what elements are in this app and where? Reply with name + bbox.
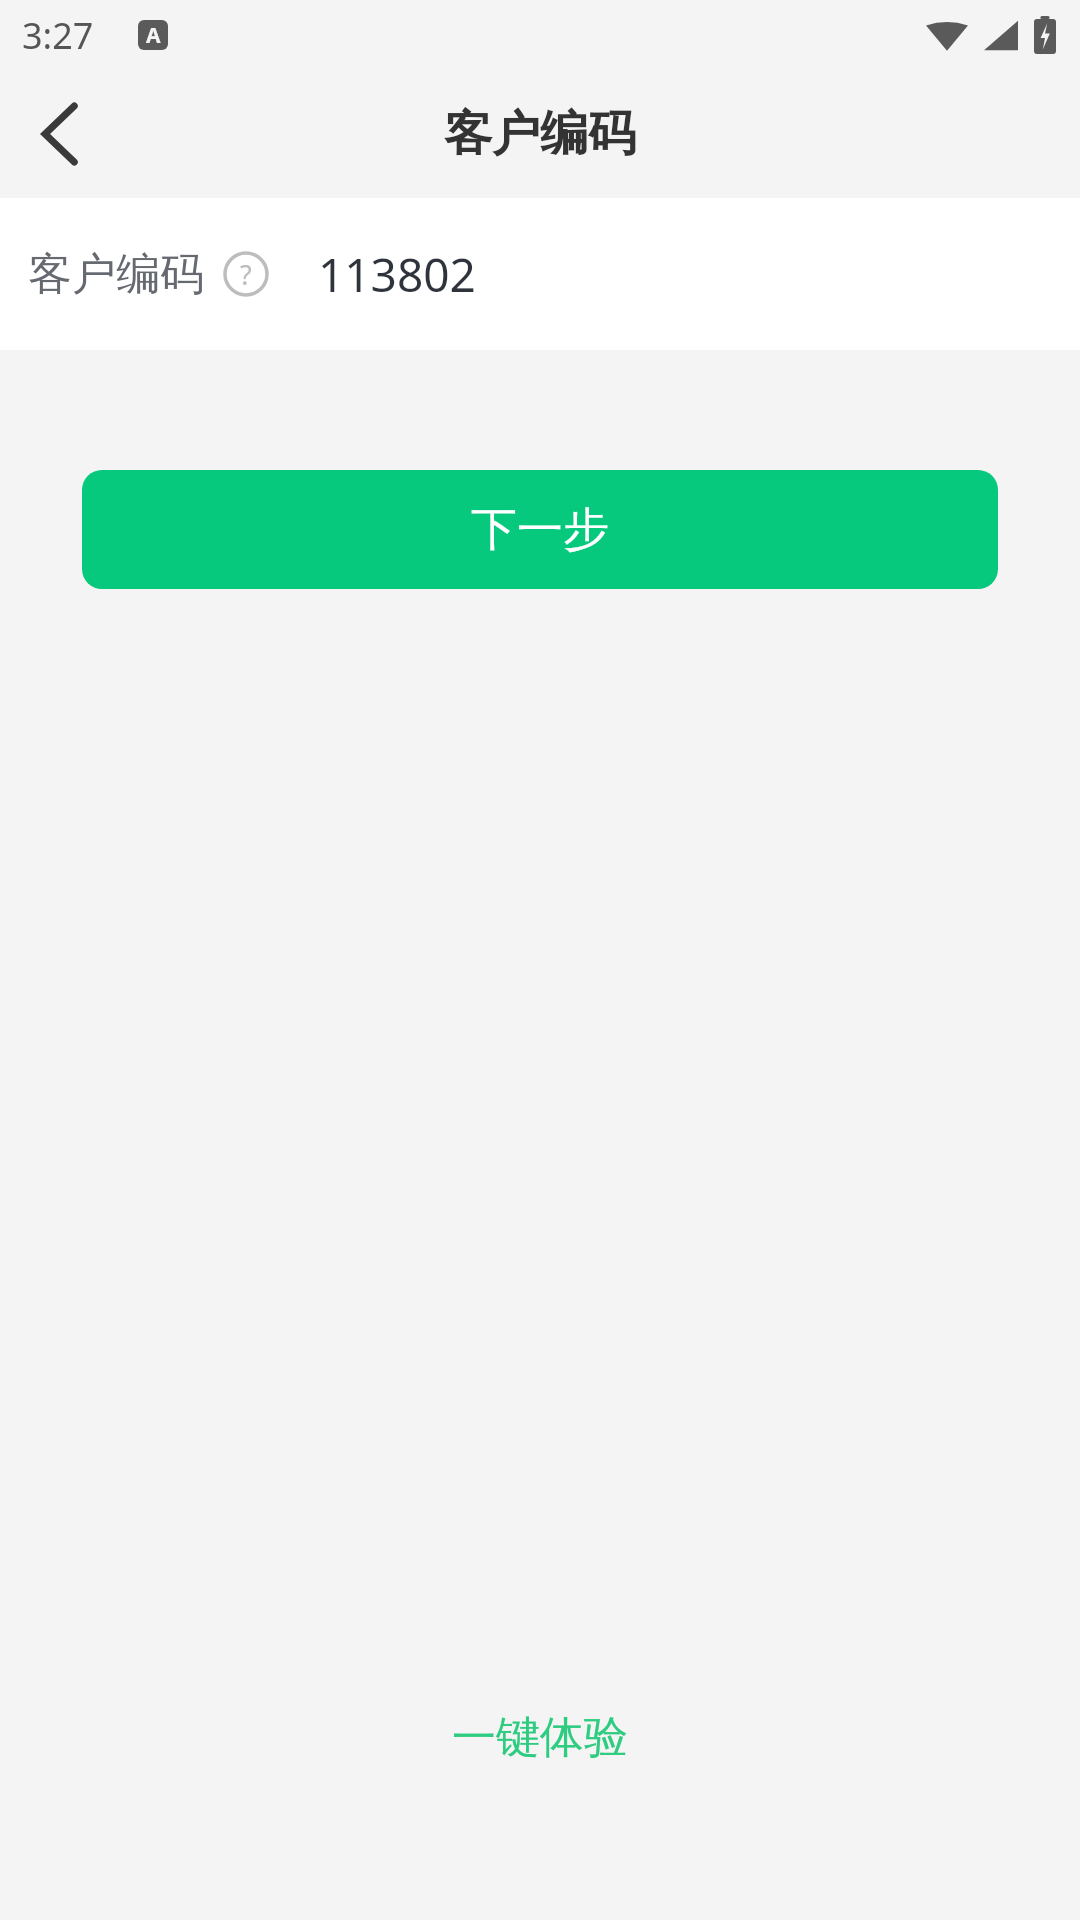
button[interactable]: Help (220, 248, 272, 300)
staticText: ? (240, 256, 252, 293)
button[interactable]: 下一步 (82, 470, 998, 589)
button[interactable]: 一键体验 (428, 1700, 652, 1775)
staticText: 113802 (318, 243, 476, 306)
button[interactable]: 客户编码 (0, 198, 1080, 350)
button[interactable]: Back (0, 70, 120, 198)
staticText: 客户编码 (28, 247, 204, 302)
staticText: 客户编码 (444, 104, 636, 164)
staticText: 一键体验 (452, 1710, 628, 1765)
staticText: 3:27 (22, 11, 94, 60)
staticText: 下一步 (471, 501, 609, 559)
staticText: A (146, 21, 161, 50)
